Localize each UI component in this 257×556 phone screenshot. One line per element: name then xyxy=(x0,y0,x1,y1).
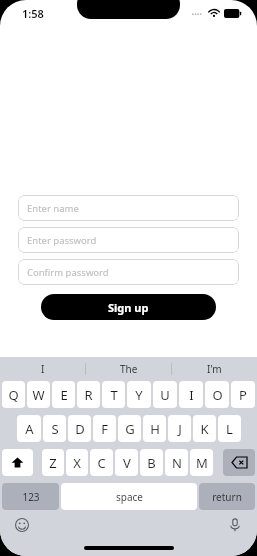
button[interactable]: K xyxy=(193,415,216,442)
button[interactable]: Z xyxy=(42,449,64,476)
button[interactable]: R xyxy=(77,381,100,408)
button[interactable]: M xyxy=(190,449,213,476)
button[interactable]: Q xyxy=(2,381,25,408)
button[interactable]: F xyxy=(93,415,116,442)
button[interactable]: Shift xyxy=(2,449,33,476)
button[interactable]: C xyxy=(90,449,113,476)
button[interactable]: O xyxy=(205,381,229,408)
staticText: H xyxy=(150,420,160,438)
button[interactable]: The xyxy=(86,357,171,381)
staticText: T xyxy=(110,386,118,404)
button[interactable]: Confirm password xyxy=(18,259,239,285)
staticText: return xyxy=(212,490,242,504)
staticText: N xyxy=(172,454,182,472)
button[interactable]: Enter password xyxy=(18,227,239,253)
button[interactable]: B xyxy=(140,449,163,476)
staticText: J xyxy=(178,420,182,438)
staticText: V xyxy=(123,454,131,472)
staticText: P xyxy=(239,386,247,404)
button[interactable]: V xyxy=(115,449,138,476)
button[interactable]: return xyxy=(199,483,255,510)
button[interactable]: L xyxy=(218,415,241,442)
staticText: 1:58 xyxy=(22,6,44,21)
button[interactable]: P xyxy=(231,381,255,408)
button[interactable]: W xyxy=(27,381,50,408)
button[interactable]: space xyxy=(61,483,197,510)
staticText: M xyxy=(196,454,208,472)
staticText: Sign up xyxy=(108,300,149,315)
button[interactable]: I'm xyxy=(172,357,257,381)
button[interactable]: H xyxy=(143,415,166,442)
staticText: K xyxy=(200,420,209,438)
staticText: C xyxy=(97,454,106,472)
button[interactable]: A xyxy=(17,415,41,442)
staticText: Z xyxy=(49,454,57,472)
staticText: R xyxy=(84,386,93,404)
staticText: W xyxy=(32,386,45,404)
staticText: Q xyxy=(8,386,19,404)
button[interactable]: N xyxy=(165,449,188,476)
staticText: Enter password xyxy=(27,234,97,247)
staticText: I xyxy=(41,362,45,376)
button[interactable]: I xyxy=(179,381,203,408)
staticText: space xyxy=(116,490,143,504)
button[interactable]: J xyxy=(168,415,191,442)
staticText: The xyxy=(120,362,138,376)
button[interactable]: T xyxy=(102,381,125,408)
button[interactable]: S xyxy=(43,415,66,442)
staticText: I xyxy=(189,386,194,404)
staticText: I'm xyxy=(207,362,222,376)
button[interactable]: 123 xyxy=(2,483,59,510)
staticText: X xyxy=(73,454,81,472)
staticText: O xyxy=(212,386,223,404)
button[interactable]: Enter name xyxy=(18,195,239,221)
staticText: 123 xyxy=(22,490,40,504)
staticText: E xyxy=(60,386,68,404)
button[interactable]: D xyxy=(68,415,91,442)
button[interactable]: Backspace xyxy=(223,449,255,476)
staticText: S xyxy=(51,420,59,438)
staticText: G xyxy=(125,420,135,438)
button[interactable]: Emoji xyxy=(10,513,34,537)
staticText: Y xyxy=(135,386,143,404)
staticText: D xyxy=(75,420,85,438)
staticText: U xyxy=(160,386,170,404)
button[interactable]: Dictation xyxy=(223,513,247,537)
button[interactable]: I xyxy=(0,357,85,381)
button[interactable]: E xyxy=(52,381,75,408)
staticText: L xyxy=(226,420,233,438)
staticText: F xyxy=(101,420,108,438)
staticText: A xyxy=(25,420,34,438)
button[interactable]: G xyxy=(118,415,141,442)
staticText: Confirm password xyxy=(27,266,109,279)
button[interactable]: X xyxy=(66,449,88,476)
button[interactable]: Sign up xyxy=(41,294,216,320)
button[interactable]: Y xyxy=(127,381,151,408)
staticText: Enter name xyxy=(27,202,79,215)
staticText: B xyxy=(147,454,156,472)
button[interactable]: U xyxy=(153,381,177,408)
